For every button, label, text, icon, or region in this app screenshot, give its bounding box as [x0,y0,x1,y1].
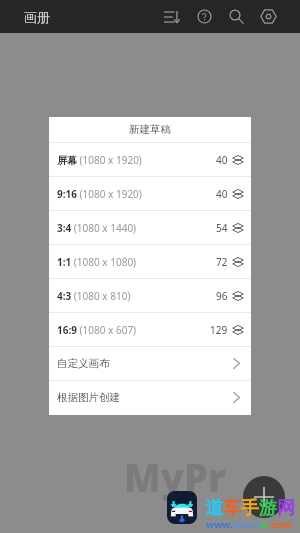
staticText: 40 [216,187,228,201]
button[interactable]: 4:3 (1080 x 810) [49,279,251,312]
button[interactable]: New [243,476,285,518]
button[interactable]: Help [188,0,220,33]
staticText: 新建草稿 [129,123,171,136]
staticText: MyPr [124,451,226,503]
staticText: 画册 [24,9,50,25]
staticText: 129 [210,323,228,337]
staticText: 9:16 (1080 x 1920) [57,187,142,201]
staticText: 40 [216,153,228,167]
staticText: 3:4 (1080 x 1440) [57,221,137,235]
button[interactable]: 16:9 (1080 x 607) [49,313,251,346]
staticText: 96 [216,289,228,303]
button[interactable]: 9:16 (1080 x 1920) [49,177,251,210]
staticText: 屏幕 (1080 x 1920) [57,153,142,167]
button[interactable]: Sort [156,0,188,33]
staticText: 72 [216,255,228,269]
staticText: 4:3 (1080 x 810) [57,289,131,303]
button[interactable]: 屏幕 (1080 x 1920) [49,143,251,176]
button[interactable]: 根据图片创建 [49,381,251,414]
button[interactable]: Search [220,0,252,33]
staticText: www.lmwusz.com [206,518,292,531]
button[interactable]: 3:4 (1080 x 1440) [49,211,251,244]
staticText: 根据图片创建 [57,391,120,404]
button[interactable]: 1:1 (1080 x 1080) [49,245,251,278]
staticText: 1:1 (1080 x 1080) [57,255,137,269]
staticText: 道车手游网 [205,497,295,520]
staticText: 自定义画布 [57,357,110,370]
staticText: 16:9 (1080 x 607) [57,323,137,337]
staticText: 54 [216,221,228,235]
button[interactable]: Settings [252,0,284,33]
button[interactable]: 自定义画布 [49,347,251,380]
